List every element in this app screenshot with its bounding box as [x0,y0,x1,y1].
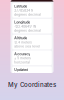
staticText: above sea level [14,45,40,48]
staticText: 12.4 meters [14,41,32,44]
staticText: My Coordinates [8,81,56,88]
button[interactable]: Share Location [17,84,47,90]
staticText: Altitude [14,36,27,40]
staticText: just now [14,72,27,76]
staticText: Accuracy [14,52,30,56]
staticText: horizontal [14,61,30,64]
staticText: degrees decimal [14,13,41,16]
staticText: degrees decimal [14,29,41,32]
staticText: Share Location [20,85,44,89]
staticText: -122.406417 W [14,25,36,28]
staticText: ± 5 meters [14,56,31,60]
staticText: Longitude [14,20,30,24]
staticText: Latitude [14,4,27,8]
staticText: 37.785834 N [14,9,33,12]
staticText: Updated [14,67,28,72]
